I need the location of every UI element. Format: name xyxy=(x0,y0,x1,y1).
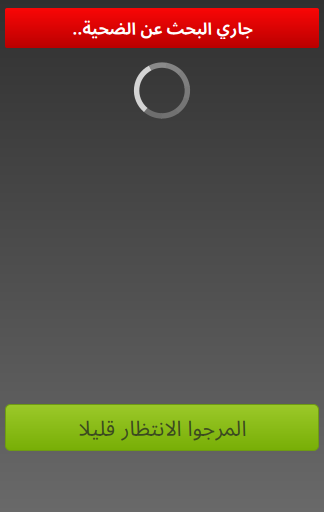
staticText: جاري البحث عن الضحية.. xyxy=(72,17,252,39)
button[interactable]: المرجوا الانتظار قليلا xyxy=(5,404,319,451)
staticText: المرجوا الانتظار قليلا xyxy=(78,413,246,442)
